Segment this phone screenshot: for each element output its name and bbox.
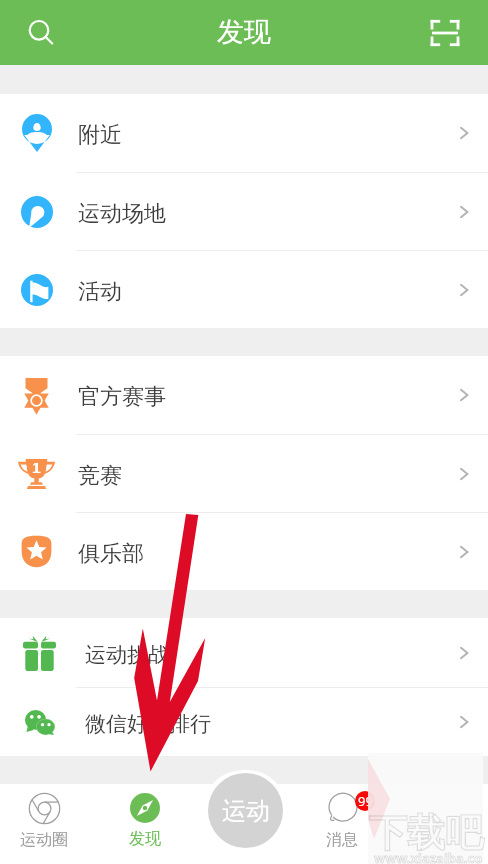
button[interactable]: Search — [15, 9, 63, 57]
staticText: 发现 — [217, 15, 271, 49]
button[interactable]: 官方赛事 — [0, 356, 488, 434]
staticText: 附近 — [78, 121, 122, 149]
button[interactable]: 运动挑战 — [0, 618, 488, 687]
staticText: 99 — [358, 792, 373, 810]
button[interactable]: 99 — [294, 784, 390, 864]
button[interactable]: 竞赛 — [0, 435, 488, 512]
button[interactable]: 运动圈 — [0, 784, 92, 864]
staticText: 发现 — [129, 829, 161, 849]
button[interactable]: 运动场地 — [0, 173, 488, 250]
staticText: www.xiazaiba.com — [374, 849, 488, 864]
button[interactable]: 发现 — [97, 784, 193, 864]
button[interactable]: Scan QR code — [421, 9, 469, 57]
staticText: 消息 — [326, 830, 358, 850]
button[interactable]: 运动 — [208, 773, 283, 848]
button[interactable]: 微信好友排行 — [0, 688, 488, 756]
staticText: 运动挑战 — [85, 642, 169, 668]
staticText: 微信好友排行 — [85, 711, 211, 737]
button[interactable]: 活动 — [0, 251, 488, 328]
staticText: 官方赛事 — [78, 383, 166, 411]
staticText: 下载吧 — [369, 809, 483, 857]
staticText: 运动 — [222, 796, 270, 826]
staticText: 俱乐部 — [78, 540, 144, 568]
button[interactable]: 附近 — [0, 94, 488, 172]
staticText: 运动圈 — [20, 830, 68, 850]
staticText: 竞赛 — [78, 462, 122, 490]
button[interactable]: 俱乐部 — [0, 513, 488, 590]
staticText: 活动 — [78, 278, 122, 306]
staticText: 运动场地 — [78, 200, 166, 228]
